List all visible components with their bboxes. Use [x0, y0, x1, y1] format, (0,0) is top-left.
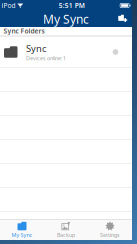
button[interactable]: Sync [0, 37, 132, 68]
button[interactable]: My Sync [0, 220, 44, 240]
button[interactable]: Settings [88, 220, 132, 240]
staticText: 5:51 PM [59, 1, 85, 10]
staticText: My Sync [43, 11, 89, 27]
button[interactable]: Add sync folder [115, 11, 129, 27]
staticText: iPod [1, 1, 15, 10]
staticText: My Sync [11, 231, 32, 238]
staticText: Sync [26, 42, 46, 55]
staticText: Backup [57, 231, 75, 238]
button[interactable]: Backup [44, 220, 88, 240]
staticText: Settings [100, 231, 120, 238]
staticText: Devices online: 1 [26, 55, 66, 62]
staticText: Sync Folders [3, 27, 44, 35]
